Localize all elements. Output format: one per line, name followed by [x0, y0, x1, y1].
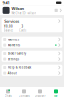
button[interactable]: Favorites: [2, 37, 62, 42]
staticText: Sticker Gallery: [8, 52, 26, 55]
staticText: Cards: [19, 29, 26, 32]
staticText: Settings: [8, 57, 19, 61]
button[interactable]: 3: [16, 24, 30, 32]
staticText: Chats: [4, 94, 11, 98]
staticText: Services: [4, 18, 19, 24]
staticText: ¥0.00: [4, 25, 13, 28]
staticText: Wilson: [11, 6, 24, 11]
staticText: Me: [54, 94, 58, 98]
staticText: 9:41: [3, 0, 10, 5]
staticText: WeChat ID: wilson: [11, 11, 36, 15]
button[interactable]: ¥0.00: [2, 24, 16, 32]
button[interactable]: About: [2, 70, 62, 76]
staticText: About: [8, 71, 17, 75]
staticText: 3: [22, 25, 24, 28]
button[interactable]: Me: [48, 87, 64, 100]
staticText: Contacts: [18, 94, 29, 98]
button[interactable]: Help & Feedback: [2, 65, 62, 70]
staticText: Balance: [4, 29, 14, 32]
button[interactable]: Sticker Gallery: [2, 51, 62, 56]
button[interactable]: Moments: [2, 42, 62, 48]
button[interactable]: Services: [2, 18, 62, 24]
staticText: Discover: [34, 94, 45, 98]
staticText: Help & Feedback: [8, 66, 31, 69]
button[interactable]: Wilson: [0, 5, 64, 15]
button[interactable]: Discover: [32, 87, 48, 100]
button[interactable]: Contacts: [16, 87, 32, 100]
staticText: Favorites: [8, 38, 19, 41]
staticText: Moments: [8, 43, 20, 47]
button[interactable]: Settings: [2, 56, 62, 62]
button[interactable]: Chats: [0, 87, 16, 100]
